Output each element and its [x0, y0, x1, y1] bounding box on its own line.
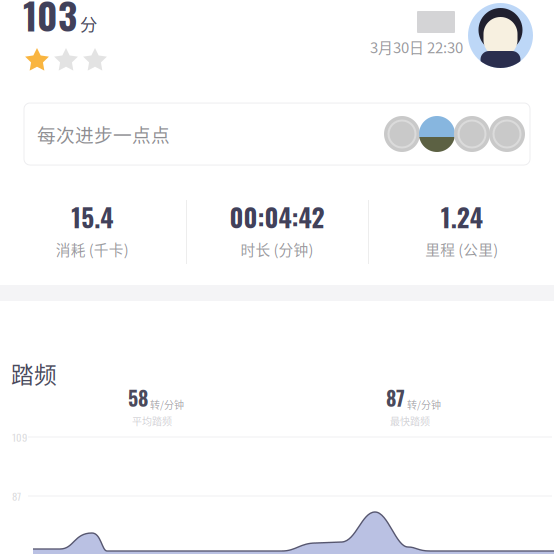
staticText: 里程 (公里): [425, 238, 498, 260]
staticText: 转/分钟: [407, 397, 441, 412]
staticText: 103: [23, 0, 77, 42]
staticText: 87: [12, 488, 21, 504]
staticText: 最快踏频: [390, 414, 430, 428]
staticText: 15.4: [71, 198, 113, 235]
staticText: 58: [128, 383, 148, 413]
staticText: 00:04:42: [229, 198, 324, 235]
staticText: 平均踏频: [132, 414, 172, 428]
staticText: 分: [80, 11, 97, 36]
staticText: 每次进步一点点: [37, 120, 170, 147]
staticText: 87: [386, 383, 405, 413]
button[interactable]: 每次进步一点点: [24, 103, 530, 165]
staticText: 踏频: [11, 357, 57, 390]
staticText: 转/分钟: [150, 397, 184, 412]
staticText: 1.24: [441, 198, 483, 235]
staticText: 时长 (分钟): [240, 238, 313, 260]
staticText: 消耗 (千卡): [56, 238, 129, 260]
staticText: 3月30日 22:30: [370, 36, 463, 58]
staticText: 109: [12, 429, 27, 445]
